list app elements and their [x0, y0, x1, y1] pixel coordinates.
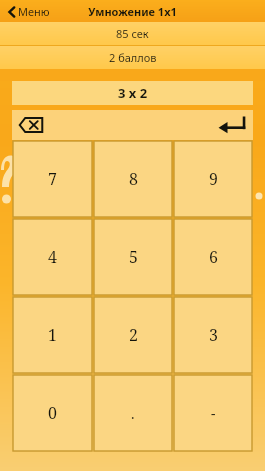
staticText: - [211, 404, 216, 423]
staticText: 4 [48, 246, 57, 268]
button[interactable]: Enter [215, 114, 249, 136]
staticText: 2 [129, 324, 138, 346]
button[interactable]: . [94, 375, 172, 451]
button[interactable]: 1 [13, 297, 92, 373]
staticText: . [131, 404, 135, 423]
button[interactable]: 9 [174, 141, 252, 217]
staticText: 85 сек [116, 26, 149, 41]
staticText: 3 [209, 324, 218, 346]
button[interactable]: 3 x 2 [12, 81, 253, 105]
staticText: 9 [209, 168, 218, 190]
button[interactable]: Меню [6, 2, 52, 21]
staticText: 1 [48, 324, 57, 346]
staticText: 3 x 2 [118, 84, 148, 102]
staticText: 0 [48, 402, 57, 424]
staticText: Умножение 1x1 [88, 4, 177, 19]
button[interactable]: - [174, 375, 252, 451]
button[interactable]: 2 баллов [0, 46, 265, 69]
button[interactable]: Backspace [16, 115, 46, 135]
button[interactable]: 6 [174, 219, 252, 295]
button[interactable]: 3 [174, 297, 252, 373]
button[interactable]: 5 [94, 219, 172, 295]
staticText: 8 [129, 168, 138, 190]
staticText: Меню [18, 4, 50, 19]
button[interactable]: 8 [94, 141, 172, 217]
staticText: 6 [209, 246, 218, 268]
button[interactable]: 7 [13, 141, 92, 217]
button[interactable]: 4 [13, 219, 92, 295]
button[interactable]: 2 [94, 297, 172, 373]
staticText: 5 [129, 246, 138, 268]
staticText: 7 [48, 168, 57, 190]
button[interactable]: 85 сек [0, 22, 265, 45]
button[interactable]: 0 [13, 375, 92, 451]
staticText: 2 баллов [109, 50, 157, 65]
